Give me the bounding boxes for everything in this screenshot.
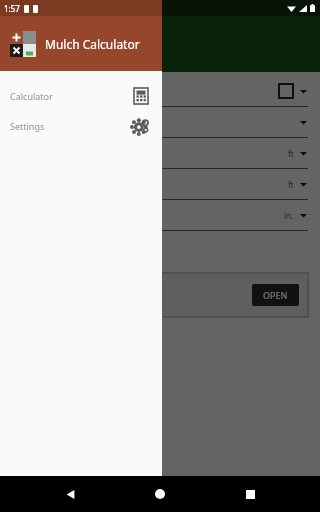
button[interactable]: Recents [230, 476, 270, 512]
button[interactable]: Settings [0, 111, 162, 141]
staticText: Mulch Calculator [45, 36, 140, 52]
button[interactable]: Home [140, 476, 180, 512]
button[interactable]: Back [50, 476, 90, 512]
staticText: OPEN [263, 289, 288, 301]
staticText: 1:57 [4, 3, 20, 14]
staticText: in. [284, 210, 294, 221]
button[interactable]: Select unit [298, 210, 308, 220]
button[interactable]: Calculator [0, 81, 162, 111]
button[interactable]: Select unit [298, 86, 308, 96]
staticText: Calculator [10, 90, 53, 102]
staticText: ft [288, 179, 294, 190]
staticText: Settings [10, 120, 45, 132]
button[interactable]: Select unit [298, 117, 308, 127]
button[interactable]: Checkbox [279, 84, 293, 98]
staticText: ft [288, 148, 294, 159]
button[interactable]: Select unit [298, 179, 308, 189]
button[interactable]: Select unit [298, 148, 308, 158]
button[interactable]: OPEN [252, 284, 299, 306]
